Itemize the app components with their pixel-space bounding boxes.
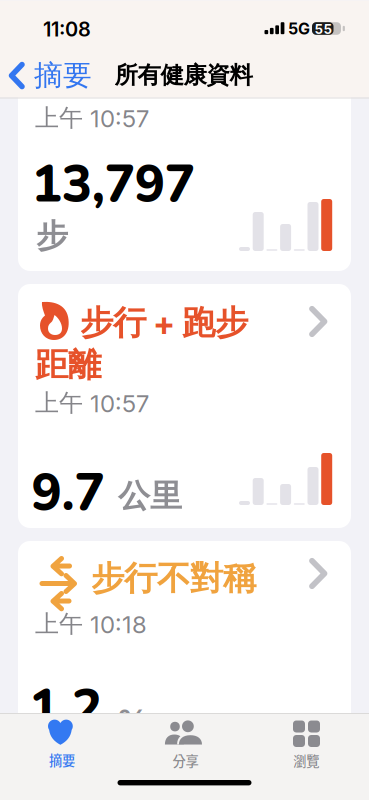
staticText: 11:08 (43, 17, 91, 41)
staticText: 5G (288, 19, 310, 38)
staticText: 分享 (172, 751, 198, 770)
staticText: 上午 10:57 (35, 388, 149, 418)
staticText: 步行 + 跑步 (80, 302, 248, 344)
staticText: 距離 (35, 344, 101, 386)
staticText: 摘要 (49, 750, 75, 769)
staticText: 步 (36, 216, 68, 256)
button[interactable]: 摘要 (10, 57, 92, 94)
staticText: 55 (314, 21, 332, 37)
staticText: 所有健康資料 (114, 60, 252, 90)
button[interactable]: 分享 (146, 714, 226, 770)
staticText: 1.2 (29, 674, 102, 743)
button[interactable]: 瀏覽 (267, 714, 347, 770)
staticText: 上午 10:57 (35, 103, 149, 133)
staticText: 上午 10:18 (35, 609, 147, 639)
button[interactable]: 上午 10:57 (18, 60, 351, 271)
button[interactable]: 步行 + 跑步 (18, 284, 351, 528)
staticText: % (117, 701, 148, 740)
staticText: 9.7 (31, 459, 104, 528)
button[interactable]: 摘要 (21, 714, 101, 770)
staticText: 公里 (118, 476, 182, 516)
button[interactable]: 步行不對稱 (18, 541, 351, 800)
staticText: 步行不對稱 (91, 557, 256, 599)
staticText: 13,797 (32, 150, 195, 219)
staticText: 瀏覽 (293, 751, 319, 770)
staticText: 摘要 (34, 57, 92, 94)
